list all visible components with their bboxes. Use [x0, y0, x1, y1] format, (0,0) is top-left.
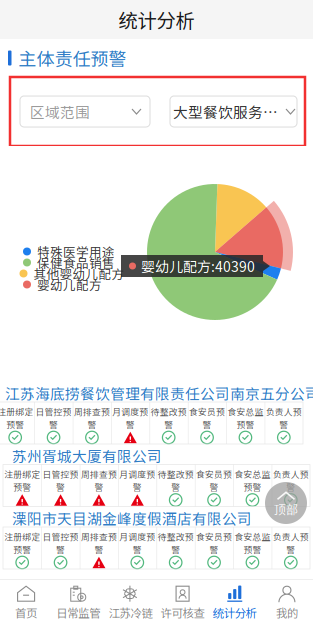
staticText: 预警 — [13, 480, 31, 493]
staticText: 负责人预 — [273, 467, 309, 480]
staticText: 苏州胥城大厦有限公司 — [12, 445, 162, 466]
button[interactable]: 统计分析 — [209, 580, 261, 626]
staticText: 注册绑定 — [4, 530, 40, 543]
staticText: 警 — [56, 543, 65, 555]
staticText: 注册绑定 — [4, 467, 40, 480]
staticText: 大型餐饮服务… — [173, 101, 278, 122]
staticText: 月调度预 — [119, 530, 155, 543]
staticText: 警 — [133, 480, 142, 493]
button[interactable]: 首页 — [0, 580, 52, 626]
staticText: 预警 — [243, 543, 261, 555]
staticText: 警 — [126, 418, 135, 430]
staticText: 周排查预 — [81, 467, 117, 480]
staticText: 预警 — [6, 418, 24, 430]
staticText: 负责人预 — [266, 405, 302, 418]
staticText: 待整改预 — [151, 405, 187, 418]
staticText: 警 — [286, 480, 295, 493]
staticText: 统计分析 — [213, 604, 257, 621]
staticText: 警 — [94, 480, 103, 493]
staticText: 待整改预 — [158, 467, 194, 480]
staticText: 警 — [49, 418, 58, 430]
staticText: 警 — [56, 480, 65, 493]
staticText: 区域范围 — [30, 101, 90, 122]
staticText: 警 — [87, 418, 96, 430]
staticText: 周排查预 — [74, 405, 110, 418]
staticText: 警 — [203, 418, 212, 430]
staticText: 预警 — [243, 480, 261, 493]
button[interactable]: 区域范围 — [20, 96, 150, 127]
staticText: 警 — [171, 543, 180, 555]
staticText: 保健食品销售 — [37, 253, 115, 271]
staticText: 负责人预 — [273, 530, 309, 543]
staticText: 警 — [171, 480, 180, 493]
staticText: 预警 — [236, 418, 254, 430]
staticText: 月调度预 — [119, 467, 155, 480]
staticText: 警 — [94, 543, 103, 555]
staticText: 食安总监 — [234, 530, 270, 543]
staticText: 警 — [210, 543, 219, 555]
staticText: 日管控预 — [36, 405, 72, 418]
button[interactable]: 我的 — [261, 580, 313, 626]
staticText: 食安总监 — [234, 467, 270, 480]
staticText: 日管控预 — [43, 467, 79, 480]
staticText: 食安员预 — [196, 467, 232, 480]
staticText: 预警 — [13, 543, 31, 555]
staticText: 顶部 — [274, 500, 298, 518]
staticText: 食安员预 — [189, 405, 225, 418]
staticText: 婴幼儿配方 — [37, 275, 102, 293]
staticText: 警 — [133, 543, 142, 555]
button[interactable]: 大型餐饮服务… — [170, 96, 297, 127]
staticText: 日管控预 — [43, 530, 79, 543]
staticText: 警 — [279, 418, 288, 430]
button[interactable]: 日常监管 — [52, 580, 104, 626]
staticText: 我的 — [276, 604, 298, 621]
staticText: 婴幼儿配方:40390 — [141, 256, 255, 276]
staticText: 主体责任预警 — [18, 45, 126, 71]
staticText: 日常监管 — [56, 604, 100, 621]
staticText: 食安员预 — [196, 530, 232, 543]
staticText: 江苏海底捞餐饮管理有限责任公司南京五分公司 — [5, 382, 313, 404]
staticText: 警 — [286, 543, 295, 555]
staticText: 食安总监 — [227, 405, 263, 418]
staticText: 警 — [210, 480, 219, 493]
staticText: 周排查预 — [81, 530, 117, 543]
staticText: 江苏冷链 — [108, 604, 152, 621]
staticText: 警 — [164, 418, 173, 430]
staticText: 首页 — [15, 604, 37, 621]
button[interactable]: 许可核查 — [156, 580, 209, 626]
button[interactable]: 回到顶部 — [265, 482, 307, 524]
staticText: 溧阳市天目湖金峰度假酒店有限公司 — [12, 507, 252, 529]
staticText: 其他婴幼儿配方 — [33, 264, 124, 282]
staticText: 特殊医学用途 — [37, 242, 115, 260]
staticText: 注册绑定 — [0, 405, 33, 418]
button[interactable]: 江苏冷链 — [104, 580, 156, 626]
staticText: 统计分析 — [118, 5, 194, 33]
staticText: 月调度预 — [112, 405, 148, 418]
staticText: 待整改预 — [158, 530, 194, 543]
staticText: 许可核查 — [161, 604, 205, 621]
